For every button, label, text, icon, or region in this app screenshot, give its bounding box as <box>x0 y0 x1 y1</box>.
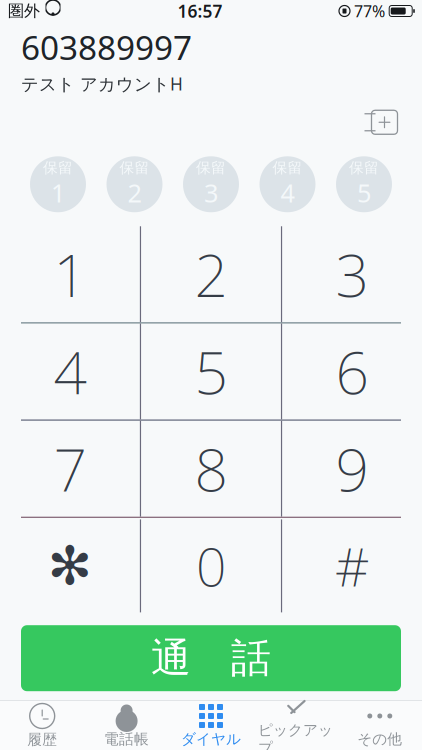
staticText: 保留 <box>119 159 149 177</box>
staticText: 履歴 <box>27 730 57 748</box>
staticText: 4 <box>280 176 294 210</box>
button[interactable]: # <box>282 518 422 614</box>
button[interactable]: 9 <box>282 421 422 517</box>
button[interactable]: 保留 <box>183 156 239 212</box>
staticText: ✻ <box>47 536 92 596</box>
button[interactable]: ダイヤル <box>169 701 253 750</box>
button[interactable]: 3 <box>282 226 422 322</box>
button[interactable]: 5 <box>141 323 281 419</box>
staticText: ピックアップ <box>258 721 333 750</box>
staticText: 9 <box>336 430 369 508</box>
button[interactable]: 保留 <box>106 156 162 212</box>
button[interactable]: 8 <box>141 421 281 517</box>
staticText: 3 <box>336 235 369 313</box>
staticText: 77% <box>354 0 385 22</box>
staticText: 圏外 <box>8 1 40 21</box>
staticText: 1 <box>53 235 86 313</box>
staticText: 通 話 <box>151 634 271 683</box>
button[interactable]: ピックアップ <box>253 701 338 750</box>
staticText: 保留 <box>43 159 73 177</box>
staticText: 16:57 <box>177 0 222 22</box>
staticText: 1 <box>51 176 65 210</box>
staticText: 8 <box>194 430 227 508</box>
button[interactable]: 通 話 <box>21 625 401 691</box>
button[interactable]: 1 <box>0 226 140 322</box>
button[interactable]: その他 <box>338 701 422 750</box>
staticText: ダイヤル <box>181 730 241 748</box>
staticText: 7 <box>53 430 86 508</box>
button[interactable]: 履歴 <box>0 701 84 750</box>
staticText: 保留 <box>349 159 379 177</box>
button[interactable]: 4 <box>0 323 140 419</box>
staticText: 6 <box>336 332 369 410</box>
button[interactable]: 保留 <box>259 156 315 212</box>
button[interactable]: 2 <box>141 226 281 322</box>
button[interactable]: 削除 <box>354 102 408 142</box>
button[interactable]: 保留 <box>30 156 86 212</box>
staticText: 電話帳 <box>104 730 149 748</box>
staticText: テスト アカウントH <box>21 72 183 95</box>
button[interactable]: 7 <box>0 421 140 517</box>
staticText: その他 <box>357 730 402 748</box>
staticText: 603889997 <box>21 25 192 69</box>
staticText: # <box>335 530 369 601</box>
button[interactable]: ✻ <box>0 518 140 614</box>
staticText: 保留 <box>272 159 302 177</box>
staticText: 5 <box>194 332 227 410</box>
staticText: 5 <box>357 176 371 210</box>
button[interactable]: 保留 <box>336 156 392 212</box>
staticText: 保留 <box>196 159 226 177</box>
button[interactable]: 電話帳 <box>84 701 169 750</box>
button[interactable]: 6 <box>282 323 422 419</box>
button[interactable]: 0 <box>141 518 281 614</box>
staticText: 4 <box>53 332 86 410</box>
staticText: 2 <box>194 235 227 313</box>
staticText: 3 <box>204 176 218 210</box>
staticText: 2 <box>127 176 141 210</box>
staticText: 0 <box>196 530 226 601</box>
